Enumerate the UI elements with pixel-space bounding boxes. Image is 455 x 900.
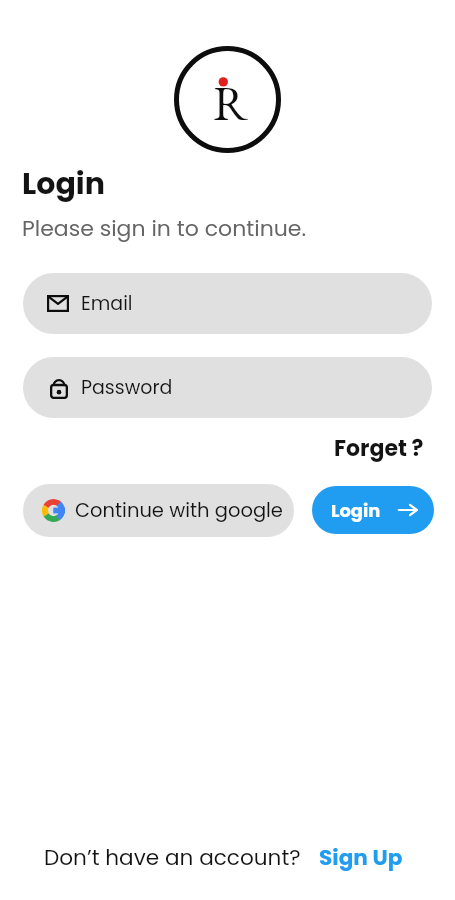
staticText: Login [331,498,381,523]
button[interactable]: Sign Up [319,842,403,872]
staticText: Don’t have an account? [44,842,301,872]
staticText: Email [81,290,133,317]
button[interactable]: Email [23,273,432,334]
staticText: Please sign in to continue. [22,213,307,244]
other: Email [47,295,69,312]
other: Password [50,376,68,399]
button[interactable]: Login [312,486,434,534]
button[interactable]: Password [23,357,432,418]
button[interactable]: Continue with google [23,484,294,537]
staticText: Password [81,374,173,401]
staticText: Continue with google [75,497,283,524]
other: Login [398,501,418,519]
staticText: R [213,71,248,135]
staticText: Login [22,163,105,205]
button[interactable]: Forget ? [334,433,424,464]
